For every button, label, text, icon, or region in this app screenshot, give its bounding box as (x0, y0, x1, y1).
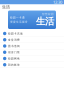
staticText: 智慧校园 (42, 12, 54, 16)
staticText: 12:30 (53, 0, 62, 5)
staticText: 校园卡充值 (8, 32, 23, 35)
staticText: 图书借阅 (8, 44, 20, 48)
staticText: 食堂消费 (8, 38, 20, 41)
staticText: 生活 (36, 16, 54, 27)
staticText: 校园一卡通 (10, 16, 25, 19)
button[interactable]: 食堂消费 (0, 37, 64, 43)
staticText: 校园网络 (8, 57, 20, 60)
button[interactable]: 图书借阅 (0, 43, 64, 49)
button[interactable]: 校园网络 (0, 55, 64, 62)
button[interactable]: 我的账单 (0, 62, 64, 68)
button[interactable]: 宿舍门禁 (0, 49, 64, 55)
staticText: 便捷生活服务 (10, 20, 28, 23)
staticText: 生活 (2, 4, 10, 9)
staticText: 我的账单 (8, 63, 20, 66)
staticText: 宿舍门禁 (8, 51, 20, 54)
button[interactable]: 校园卡充值 (0, 30, 64, 37)
